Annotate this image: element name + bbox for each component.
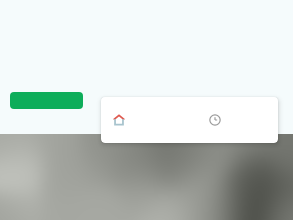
button[interactable] (10, 92, 83, 109)
button[interactable]: Home (103, 98, 134, 142)
button[interactable]: History (199, 98, 230, 142)
